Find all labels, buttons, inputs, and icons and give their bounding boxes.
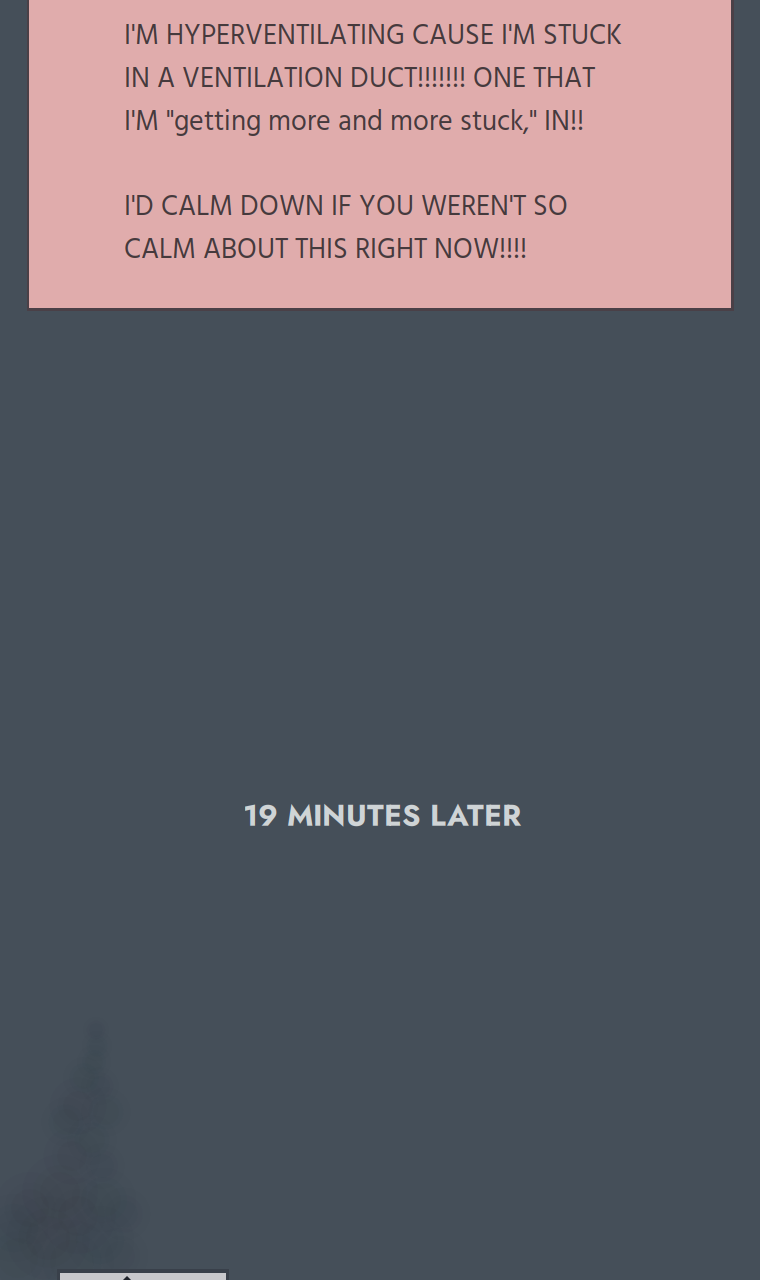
staticText: I'M HYPERVENTILATING CAUSE I'M STUCK: [124, 14, 622, 59]
staticText: 19 MINUTES LATER: [243, 794, 521, 837]
button[interactable]: Comic page: [0, 0, 760, 1280]
staticText: CALM ABOUT THIS RIGHT NOW!!!!: [124, 228, 527, 273]
staticText: I'D CALM DOWN IF YOU WEREN'T SO: [124, 185, 568, 230]
staticText: IN A VENTILATION DUCT!!!!!!! ONE THAT: [124, 57, 595, 102]
staticText: I'M "getting more and more stuck," IN!!: [124, 100, 584, 145]
